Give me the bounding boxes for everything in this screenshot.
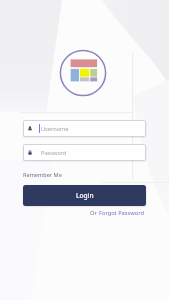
staticText: Remember Me xyxy=(23,171,62,179)
button[interactable]: Password xyxy=(23,144,146,161)
button[interactable]: Username xyxy=(23,120,146,137)
button[interactable]: Forgot Password xyxy=(99,209,144,217)
staticText: Username xyxy=(41,125,69,133)
staticText: Password xyxy=(41,149,67,157)
button[interactable]: Login xyxy=(23,185,146,206)
staticText: Login xyxy=(76,191,94,200)
staticText: Forgot Password xyxy=(99,209,144,217)
button[interactable]: Remember Me xyxy=(23,171,62,179)
staticText: Or xyxy=(90,209,99,217)
